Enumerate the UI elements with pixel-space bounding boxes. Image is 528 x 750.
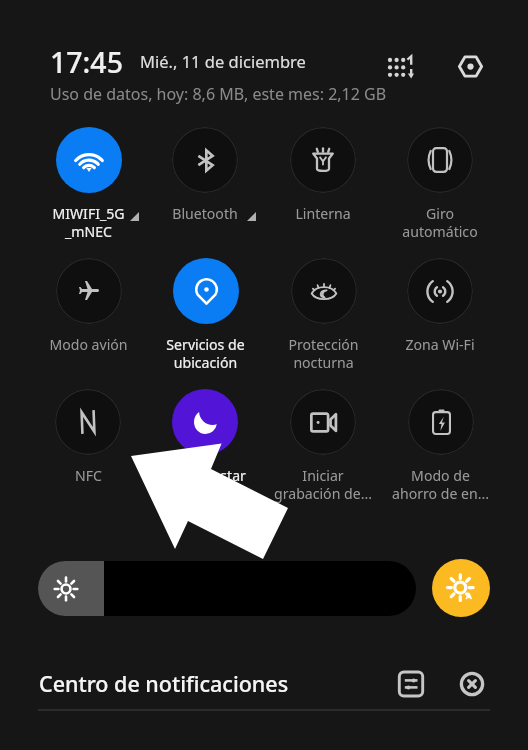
staticText: Centro de notificaciones — [39, 669, 289, 698]
button[interactable]: Modo de ahorro de en... — [382, 389, 498, 504]
staticText: Zona Wi-Fi — [405, 335, 475, 354]
staticText: Bluetooth — [172, 204, 238, 223]
button[interactable]: Protección nocturna — [265, 258, 381, 373]
staticText: NFC — [75, 466, 102, 485]
button[interactable]: Ajustes de notificaciones — [390, 663, 432, 705]
button[interactable]: Giro automático — [382, 127, 498, 242]
staticText: Protección nocturna — [288, 335, 359, 373]
staticText: Uso de datos, hoy: 8,6 MB, este mes: 2,1… — [50, 83, 387, 105]
staticText: Mié., 11 de diciembre — [140, 50, 306, 72]
button[interactable]: No molestar — [147, 389, 263, 485]
button[interactable]: MIWIFI_5G _mNEC — [30, 127, 146, 242]
button[interactable]: Ordenar accesos directos — [381, 48, 421, 88]
button[interactable]: Bluetooth — [147, 127, 263, 223]
staticText: Modo de ahorro de en... — [392, 466, 489, 504]
staticText: Modo avión — [49, 335, 128, 354]
button[interactable]: Linterna — [265, 127, 381, 223]
staticText: No molestar — [164, 466, 246, 485]
button[interactable]: Brillo automático — [432, 559, 490, 617]
staticText: Giro automático — [402, 204, 478, 242]
button[interactable]: Ajustes — [450, 46, 490, 86]
staticText: Linterna — [295, 204, 351, 223]
staticText: Servicios de ubicación — [166, 335, 245, 373]
button[interactable]: Modo avión — [30, 258, 146, 354]
button[interactable]: Borrar notificaciones — [451, 663, 493, 705]
button[interactable]: Brillo — [38, 561, 416, 616]
button[interactable]: Zona Wi-Fi — [382, 258, 498, 354]
button[interactable]: NFC — [30, 389, 146, 485]
staticText: Iniciar grabación de... — [274, 466, 372, 504]
button[interactable]: Iniciar grabación de... — [265, 389, 381, 504]
button[interactable]: Servicios de ubicación — [147, 258, 263, 373]
staticText: 17:45 — [50, 43, 123, 82]
staticText: MIWIFI_5G _mNEC — [52, 204, 125, 242]
